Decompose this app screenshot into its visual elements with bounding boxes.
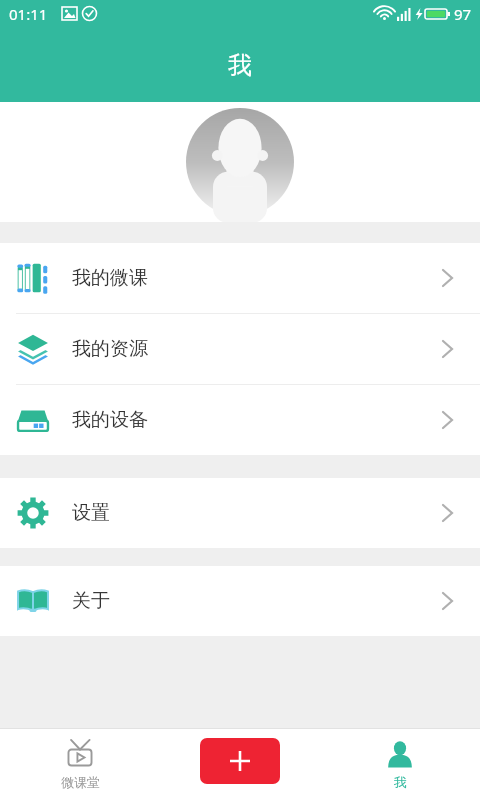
staticText: 我	[394, 774, 407, 790]
staticText: 97	[454, 4, 472, 24]
button[interactable]: 关于	[0, 566, 480, 636]
staticText: 我的设备	[72, 408, 442, 432]
button[interactable]: 设置	[0, 478, 480, 548]
staticText: 我的微课	[72, 266, 442, 290]
staticText: 我	[228, 50, 252, 80]
staticText: 01:11	[9, 4, 48, 24]
staticText: 我的资源	[72, 337, 442, 361]
staticText: 微课堂	[61, 774, 100, 790]
button[interactable]: 微课堂	[0, 728, 160, 800]
button[interactable]: 我的微课	[0, 243, 480, 313]
button[interactable]: Add	[200, 738, 280, 784]
staticText: 关于	[72, 589, 442, 613]
button[interactable]: 我的设备	[0, 385, 480, 455]
staticText: 设置	[72, 501, 442, 525]
button[interactable]: 我	[320, 728, 480, 800]
button[interactable]: 我的资源	[0, 314, 480, 384]
button[interactable]: Profile photo	[186, 108, 294, 216]
